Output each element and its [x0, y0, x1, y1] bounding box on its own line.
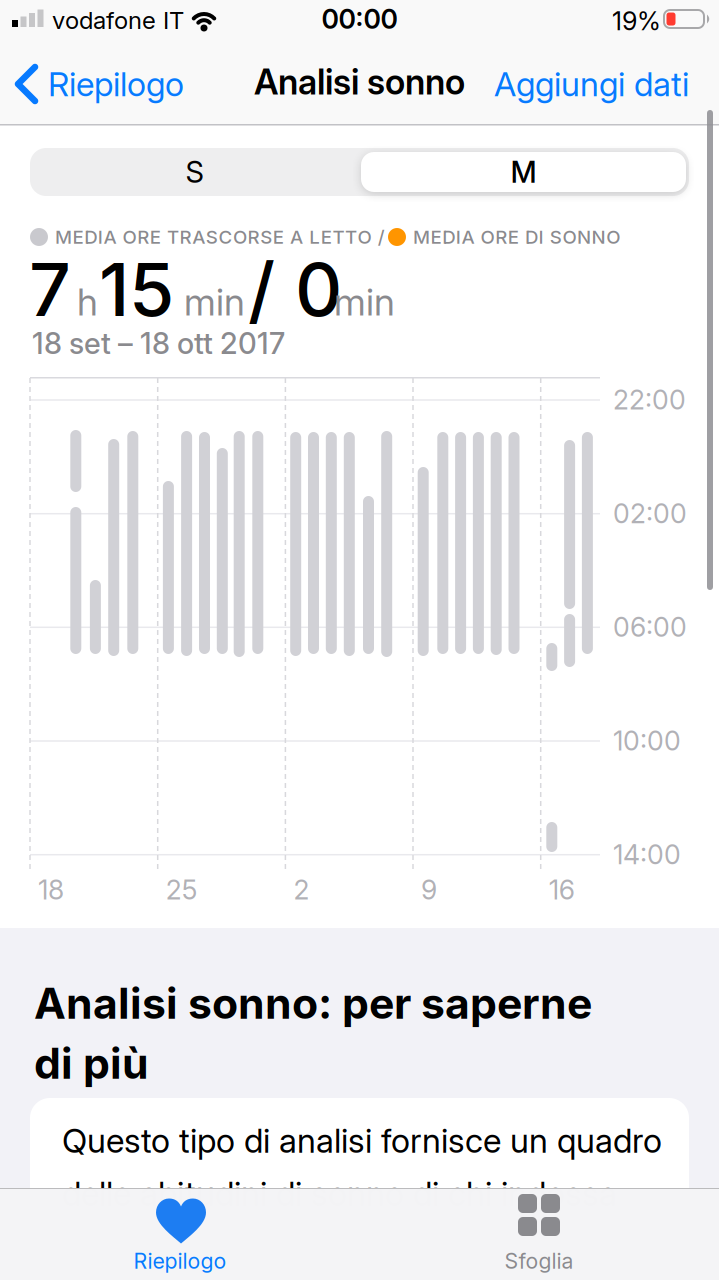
- staticText: MEDIA ORE DI SONNO: [413, 226, 620, 248]
- button[interactable]: Riepilogo: [14, 56, 184, 112]
- staticText: Questo tipo di analisi fornisce un quadr…: [62, 1121, 662, 1160]
- staticText: 7: [29, 246, 71, 332]
- staticText: 02:00: [613, 498, 687, 529]
- staticText: 9: [421, 874, 437, 905]
- staticText: S: [185, 155, 203, 189]
- staticText: 22:00: [613, 384, 686, 415]
- staticText: min: [184, 280, 245, 324]
- staticText: vodafone IT: [52, 6, 184, 34]
- staticText: 25: [166, 874, 198, 905]
- staticText: Aggiungi dati: [494, 64, 689, 104]
- staticText: Riepilogo: [48, 64, 184, 104]
- button[interactable]: Aggiungi dati: [494, 56, 689, 112]
- button[interactable]: S: [30, 148, 359, 196]
- staticText: / 0: [248, 246, 342, 332]
- staticText: Sfoglia: [504, 1248, 573, 1274]
- staticText: 18 set – 18 ott 2017: [32, 326, 285, 361]
- staticText: 16: [549, 874, 575, 905]
- button[interactable]: M: [361, 152, 686, 192]
- staticText: h: [77, 280, 98, 324]
- staticText: min: [334, 280, 395, 324]
- button[interactable]: Sfoglia: [429, 1188, 649, 1280]
- staticText: MEDIA ORE TRASCORSE A LETTO /: [55, 226, 385, 248]
- staticText: 14:00: [613, 839, 681, 870]
- staticText: Analisi sonno: per saperne: [34, 978, 592, 1028]
- staticText: 00:00: [321, 3, 397, 35]
- staticText: 06:00: [613, 611, 687, 643]
- staticText: M: [510, 155, 536, 189]
- staticText: 15: [99, 246, 174, 332]
- staticText: delle abitudini di sonno di chi indossa: [62, 1174, 617, 1213]
- button[interactable]: Riepilogo: [70, 1188, 290, 1280]
- staticText: 18: [38, 874, 64, 905]
- staticText: di più: [34, 1038, 149, 1088]
- staticText: 10:00: [613, 725, 681, 756]
- staticText: 19%: [612, 6, 661, 36]
- staticText: 2: [293, 874, 309, 905]
- staticText: Analisi sonno: [254, 62, 465, 102]
- staticText: Riepilogo: [133, 1248, 226, 1274]
